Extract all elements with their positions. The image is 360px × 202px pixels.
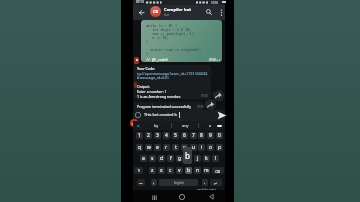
staticText: p (218, 144, 221, 151)
button[interactable]: p (216, 144, 223, 151)
staticText: k (205, 155, 208, 162)
staticText: 7 (192, 132, 195, 139)
button[interactable] (217, 111, 227, 120)
button[interactable]: a (140, 155, 147, 162)
staticText: c (169, 167, 172, 174)
staticText: 100% (211, 1, 219, 5)
button[interactable]: v (176, 167, 183, 174)
staticText: CB (153, 9, 158, 14)
button[interactable] (209, 194, 214, 200)
button[interactable]: 6 (181, 132, 188, 139)
button[interactable]: o (207, 144, 214, 151)
staticText: 5 (174, 132, 177, 139)
staticText: < (137, 123, 140, 129)
button[interactable]: 9 (207, 132, 214, 139)
staticText: r (165, 144, 168, 151)
button[interactable]: k (203, 155, 210, 162)
button[interactable]: s (149, 155, 156, 162)
staticText: Your Code: (137, 66, 156, 71)
button[interactable] (133, 110, 225, 122)
button[interactable]: u (190, 144, 197, 151)
staticText: g (178, 155, 181, 162)
staticText: f (170, 155, 172, 162)
button[interactable]: 5 (172, 132, 179, 139)
staticText: m (204, 167, 209, 174)
staticText: Program terminated successfully (137, 104, 192, 109)
staticText: &message_id=691 (137, 75, 170, 79)
staticText: by (154, 123, 159, 128)
staticText: 0 (218, 132, 221, 139)
button[interactable]: z (149, 167, 156, 174)
staticText: 3 (156, 132, 159, 139)
staticText: 6 (183, 132, 186, 139)
button[interactable]: y (181, 144, 188, 151)
staticText: j (197, 155, 199, 162)
button[interactable]: ↵ (210, 179, 222, 186)
staticText: 9 (209, 132, 212, 139)
button[interactable] (205, 99, 216, 110)
staticText: tg://openmessage?user_id=1791166582 (137, 71, 208, 75)
staticText: a (142, 155, 145, 162)
button[interactable]: n (194, 167, 201, 174)
staticText: 1 is an Armstrong number. (137, 94, 181, 99)
button[interactable] (179, 194, 185, 200)
staticText: 1 (138, 132, 141, 139)
button[interactable]: j (194, 155, 201, 162)
staticText: // @E_code6 (146, 57, 168, 61)
button[interactable]: 8 (198, 132, 205, 139)
button[interactable]: ⇧ (134, 167, 143, 174)
button[interactable]: b (185, 167, 192, 174)
staticText: h (187, 155, 191, 162)
button[interactable]: 1 (136, 132, 143, 139)
button[interactable]: c (167, 167, 174, 174)
button[interactable]: !#1 (137, 179, 145, 186)
staticText: ↵ (214, 181, 218, 185)
button[interactable]: , (151, 179, 157, 186)
button[interactable]: 2 (145, 132, 152, 139)
staticText: l (215, 155, 217, 162)
button[interactable] (220, 9, 223, 17)
button[interactable]: English (159, 179, 198, 186)
button[interactable]: i (198, 144, 205, 151)
button[interactable] (206, 9, 212, 15)
staticText: any (182, 123, 189, 128)
button[interactable]: 3 (154, 132, 161, 139)
button[interactable]: ⌫ (212, 167, 224, 174)
staticText: e (156, 144, 159, 151)
button[interactable]: f (167, 155, 174, 162)
staticText: 07:13 (136, 0, 144, 4)
staticText: d (160, 155, 163, 162)
staticText: 2 (147, 132, 150, 139)
staticText: 8 (200, 132, 203, 139)
staticText: q (138, 144, 141, 151)
button[interactable]: w (145, 144, 152, 151)
button[interactable]: 0 (216, 132, 223, 139)
button[interactable]: d (158, 155, 165, 162)
staticText: 07:03 (201, 94, 208, 98)
button[interactable]: l (212, 155, 219, 162)
staticText: , (153, 179, 155, 186)
button[interactable]: r (163, 144, 170, 151)
staticText: x (160, 167, 163, 174)
button[interactable]: q (136, 144, 143, 151)
staticText: b (187, 167, 190, 174)
button[interactable]: 4 (163, 132, 170, 139)
staticText: t (175, 144, 177, 151)
button[interactable]: t (172, 144, 179, 151)
staticText: Enter a number: 1 (137, 89, 167, 94)
button[interactable]: g (176, 155, 183, 162)
staticText: ⇧ (137, 168, 141, 173)
staticText: ⌫ (215, 169, 221, 173)
button[interactable]: m (203, 167, 210, 174)
button[interactable] (152, 195, 157, 201)
button[interactable]: x (158, 167, 165, 174)
button[interactable]: e (154, 144, 161, 151)
button[interactable]: 7 (190, 132, 197, 139)
button[interactable] (213, 90, 224, 101)
button[interactable] (139, 10, 144, 15)
button[interactable]: . (202, 179, 208, 186)
staticText: while (n > 0) { int digit = n % 10; sum … (146, 23, 202, 56)
button[interactable]: h (185, 155, 192, 162)
button[interactable]: CB (150, 6, 161, 17)
staticText: w (147, 144, 151, 151)
